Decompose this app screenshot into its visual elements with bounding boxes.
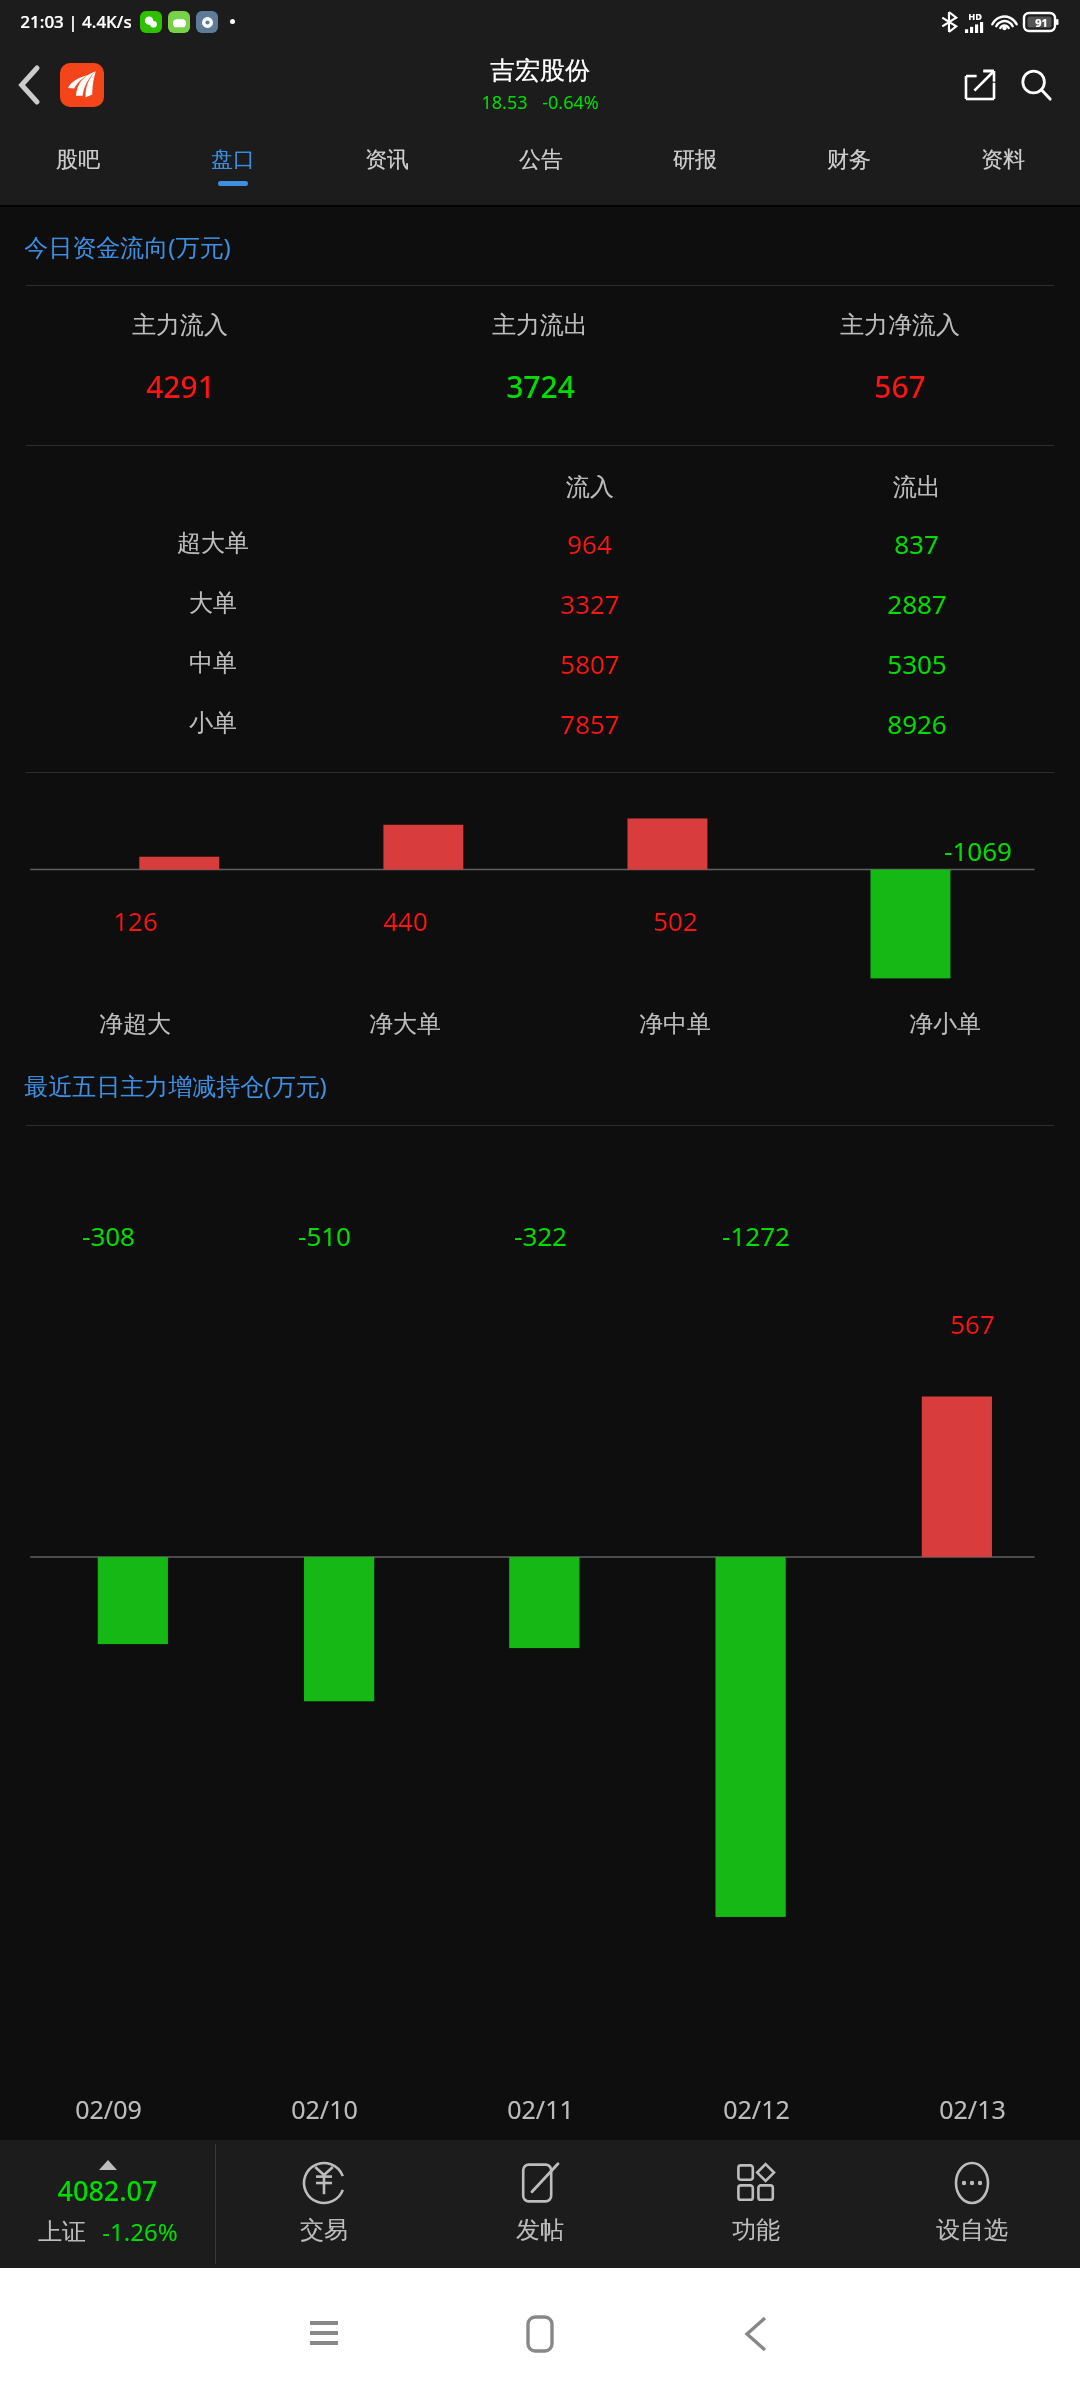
staticText: -1069: [944, 833, 1012, 868]
staticText: 流出: [893, 472, 941, 502]
staticText: 91: [1035, 15, 1048, 30]
staticText: 4082.07: [57, 2172, 158, 2209]
staticText: 大单: [189, 588, 237, 618]
staticText: 8926: [887, 706, 947, 741]
staticText: HD: [968, 10, 982, 22]
staticText: 资料: [981, 146, 1025, 174]
staticText: 2887: [887, 586, 947, 621]
staticText: 502: [653, 903, 698, 938]
button[interactable]: App logo: [60, 63, 104, 107]
staticText: 交易: [300, 2215, 348, 2245]
button[interactable]: 股吧: [0, 127, 155, 205]
staticText: 设自选: [936, 2215, 1008, 2245]
staticText: 02/11: [507, 2092, 574, 2126]
button[interactable]: 公告: [464, 127, 618, 205]
staticText: 最近五日主力增减持仓(万元): [24, 1069, 327, 1102]
button[interactable]: 发帖: [432, 2140, 648, 2268]
button[interactable]: 交易: [216, 2140, 432, 2268]
button[interactable]: 盘口: [155, 127, 310, 205]
staticText: 功能: [732, 2215, 780, 2245]
staticText: 02/13: [939, 2092, 1006, 2126]
button[interactable]: 资料: [926, 127, 1080, 205]
button[interactable]: Back: [0, 55, 60, 115]
staticText: 股吧: [56, 146, 100, 174]
staticText: 净超大: [99, 1009, 171, 1039]
staticText: 超大单: [177, 528, 249, 558]
staticText: 中单: [189, 648, 237, 678]
staticText: 3327: [560, 586, 620, 621]
staticText: -322: [514, 1218, 567, 1253]
staticText: 4291: [146, 366, 215, 407]
button[interactable]: Back: [648, 2268, 864, 2400]
staticText: -308: [82, 1218, 135, 1253]
button[interactable]: 资讯: [310, 127, 464, 205]
staticText: 5305: [887, 646, 947, 681]
button[interactable]: 研报: [618, 127, 772, 205]
button[interactable]: 功能: [648, 2140, 864, 2268]
staticText: -1.26%: [102, 2215, 178, 2248]
button[interactable]: Recents: [216, 2268, 432, 2400]
staticText: 7857: [560, 706, 620, 741]
staticText: 21:03 | 4.4K/s: [20, 10, 132, 33]
staticText: 18.53: [481, 90, 528, 115]
staticText: 盘口: [211, 146, 255, 174]
staticText: 财务: [827, 146, 871, 174]
staticText: 567: [950, 1306, 995, 1341]
staticText: 主力净流入: [840, 310, 960, 340]
button[interactable]: 4082.07: [0, 2140, 215, 2268]
staticText: 资讯: [365, 146, 409, 174]
staticText: 研报: [673, 146, 717, 174]
staticText: -1272: [722, 1218, 790, 1253]
staticText: 净小单: [909, 1009, 981, 1039]
staticText: 上证: [38, 2217, 86, 2247]
staticText: 3724: [506, 366, 575, 407]
button[interactable]: 设自选: [864, 2140, 1080, 2268]
staticText: 今日资金流向(万元): [24, 230, 231, 263]
staticText: 小单: [189, 708, 237, 738]
staticText: 净中单: [639, 1009, 711, 1039]
staticText: 837: [894, 526, 939, 561]
staticText: 567: [874, 366, 926, 407]
button[interactable]: Search: [1008, 57, 1064, 113]
staticText: 440: [383, 903, 428, 938]
staticText: 流入: [566, 472, 614, 502]
staticText: 主力流出: [492, 310, 588, 340]
staticText: 126: [113, 903, 158, 938]
staticText: 公告: [519, 146, 563, 174]
staticText: 发帖: [516, 2215, 564, 2245]
staticText: 964: [567, 526, 612, 561]
button[interactable]: Share: [952, 57, 1008, 113]
button[interactable]: Home: [432, 2268, 648, 2400]
staticText: 5807: [560, 646, 620, 681]
staticText: -510: [298, 1218, 351, 1253]
staticText: 净大单: [369, 1009, 441, 1039]
button[interactable]: 财务: [772, 127, 926, 205]
staticText: 02/12: [723, 2092, 790, 2126]
staticText: 02/10: [291, 2092, 358, 2126]
staticText: 吉宏股份: [490, 55, 590, 86]
staticText: 02/09: [75, 2092, 142, 2126]
staticText: -0.64%: [542, 90, 599, 115]
staticText: 主力流入: [132, 310, 228, 340]
